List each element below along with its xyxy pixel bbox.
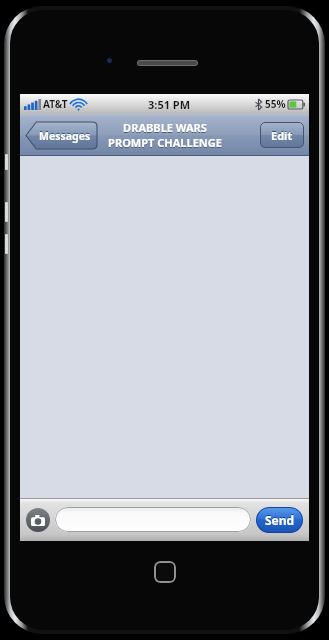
staticText: DRABBLE WARS: [123, 121, 207, 136]
button[interactable]: Send: [256, 507, 303, 533]
button[interactable]: Edit: [260, 122, 304, 148]
staticText: Messages: [39, 128, 91, 142]
staticText: Messages: [39, 129, 91, 143]
staticText: PROMPT CHALLENGE: [108, 136, 222, 151]
staticText: 55%: [265, 97, 286, 111]
staticText: 3:51 PM: [148, 97, 191, 112]
button[interactable]: Take photo or video: [26, 508, 50, 532]
staticText: Edit: [271, 127, 293, 142]
staticText: AT&T: [43, 97, 68, 111]
button[interactable]: Home: [154, 561, 176, 583]
staticText: PROMPT CHALLENGE: [108, 135, 222, 150]
staticText: DRABBLE WARS: [123, 120, 207, 135]
staticText: Send: [265, 512, 295, 528]
staticText: Send: [265, 511, 295, 527]
button[interactable]: Messages: [25, 122, 97, 149]
button[interactable]: [55, 507, 251, 532]
staticText: Edit: [271, 128, 293, 143]
